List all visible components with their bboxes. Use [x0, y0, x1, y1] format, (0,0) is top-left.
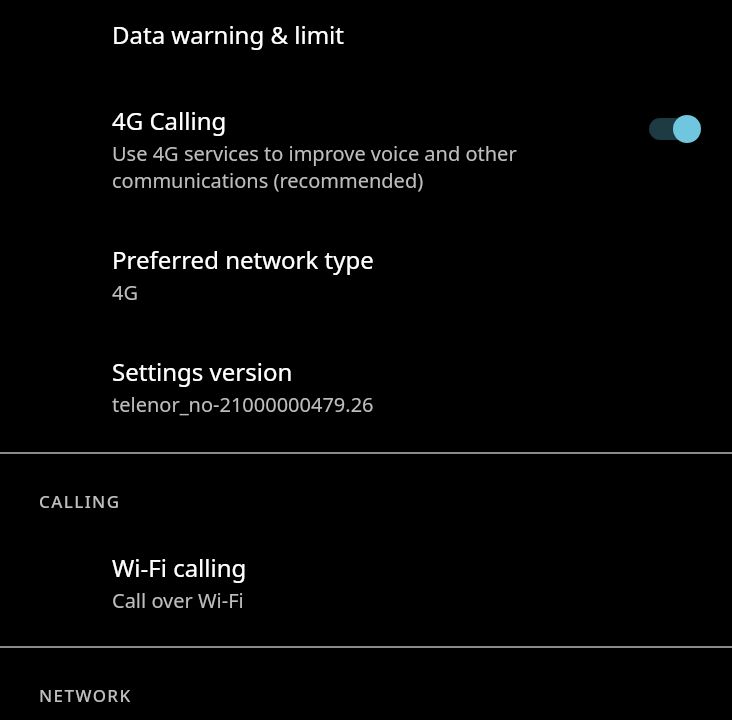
button[interactable]: Wi-Fi calling — [0, 513, 732, 624]
staticText: 4G — [112, 279, 138, 306]
staticText: NETWORK — [39, 684, 132, 707]
staticText: Call over Wi-Fi — [112, 587, 244, 614]
button[interactable]: Preferred network type — [0, 204, 732, 316]
staticText: Settings version — [112, 355, 293, 388]
staticText: 4G Calling — [112, 104, 227, 137]
staticText: Data warning & limit — [112, 18, 344, 51]
staticText: Preferred network type — [112, 243, 374, 276]
staticText: CALLING — [39, 490, 121, 513]
button[interactable]: 4G Calling toggle — [642, 106, 710, 152]
button[interactable]: 4G Calling — [0, 65, 732, 204]
button[interactable]: Settings version — [0, 316, 732, 428]
staticText: Use 4G services to improve voice and oth… — [112, 140, 620, 194]
button[interactable]: Data warning & limit — [0, 0, 732, 65]
staticText: telenor_no-21000000479.26 — [112, 391, 374, 418]
staticText: Wi-Fi calling — [112, 551, 247, 584]
